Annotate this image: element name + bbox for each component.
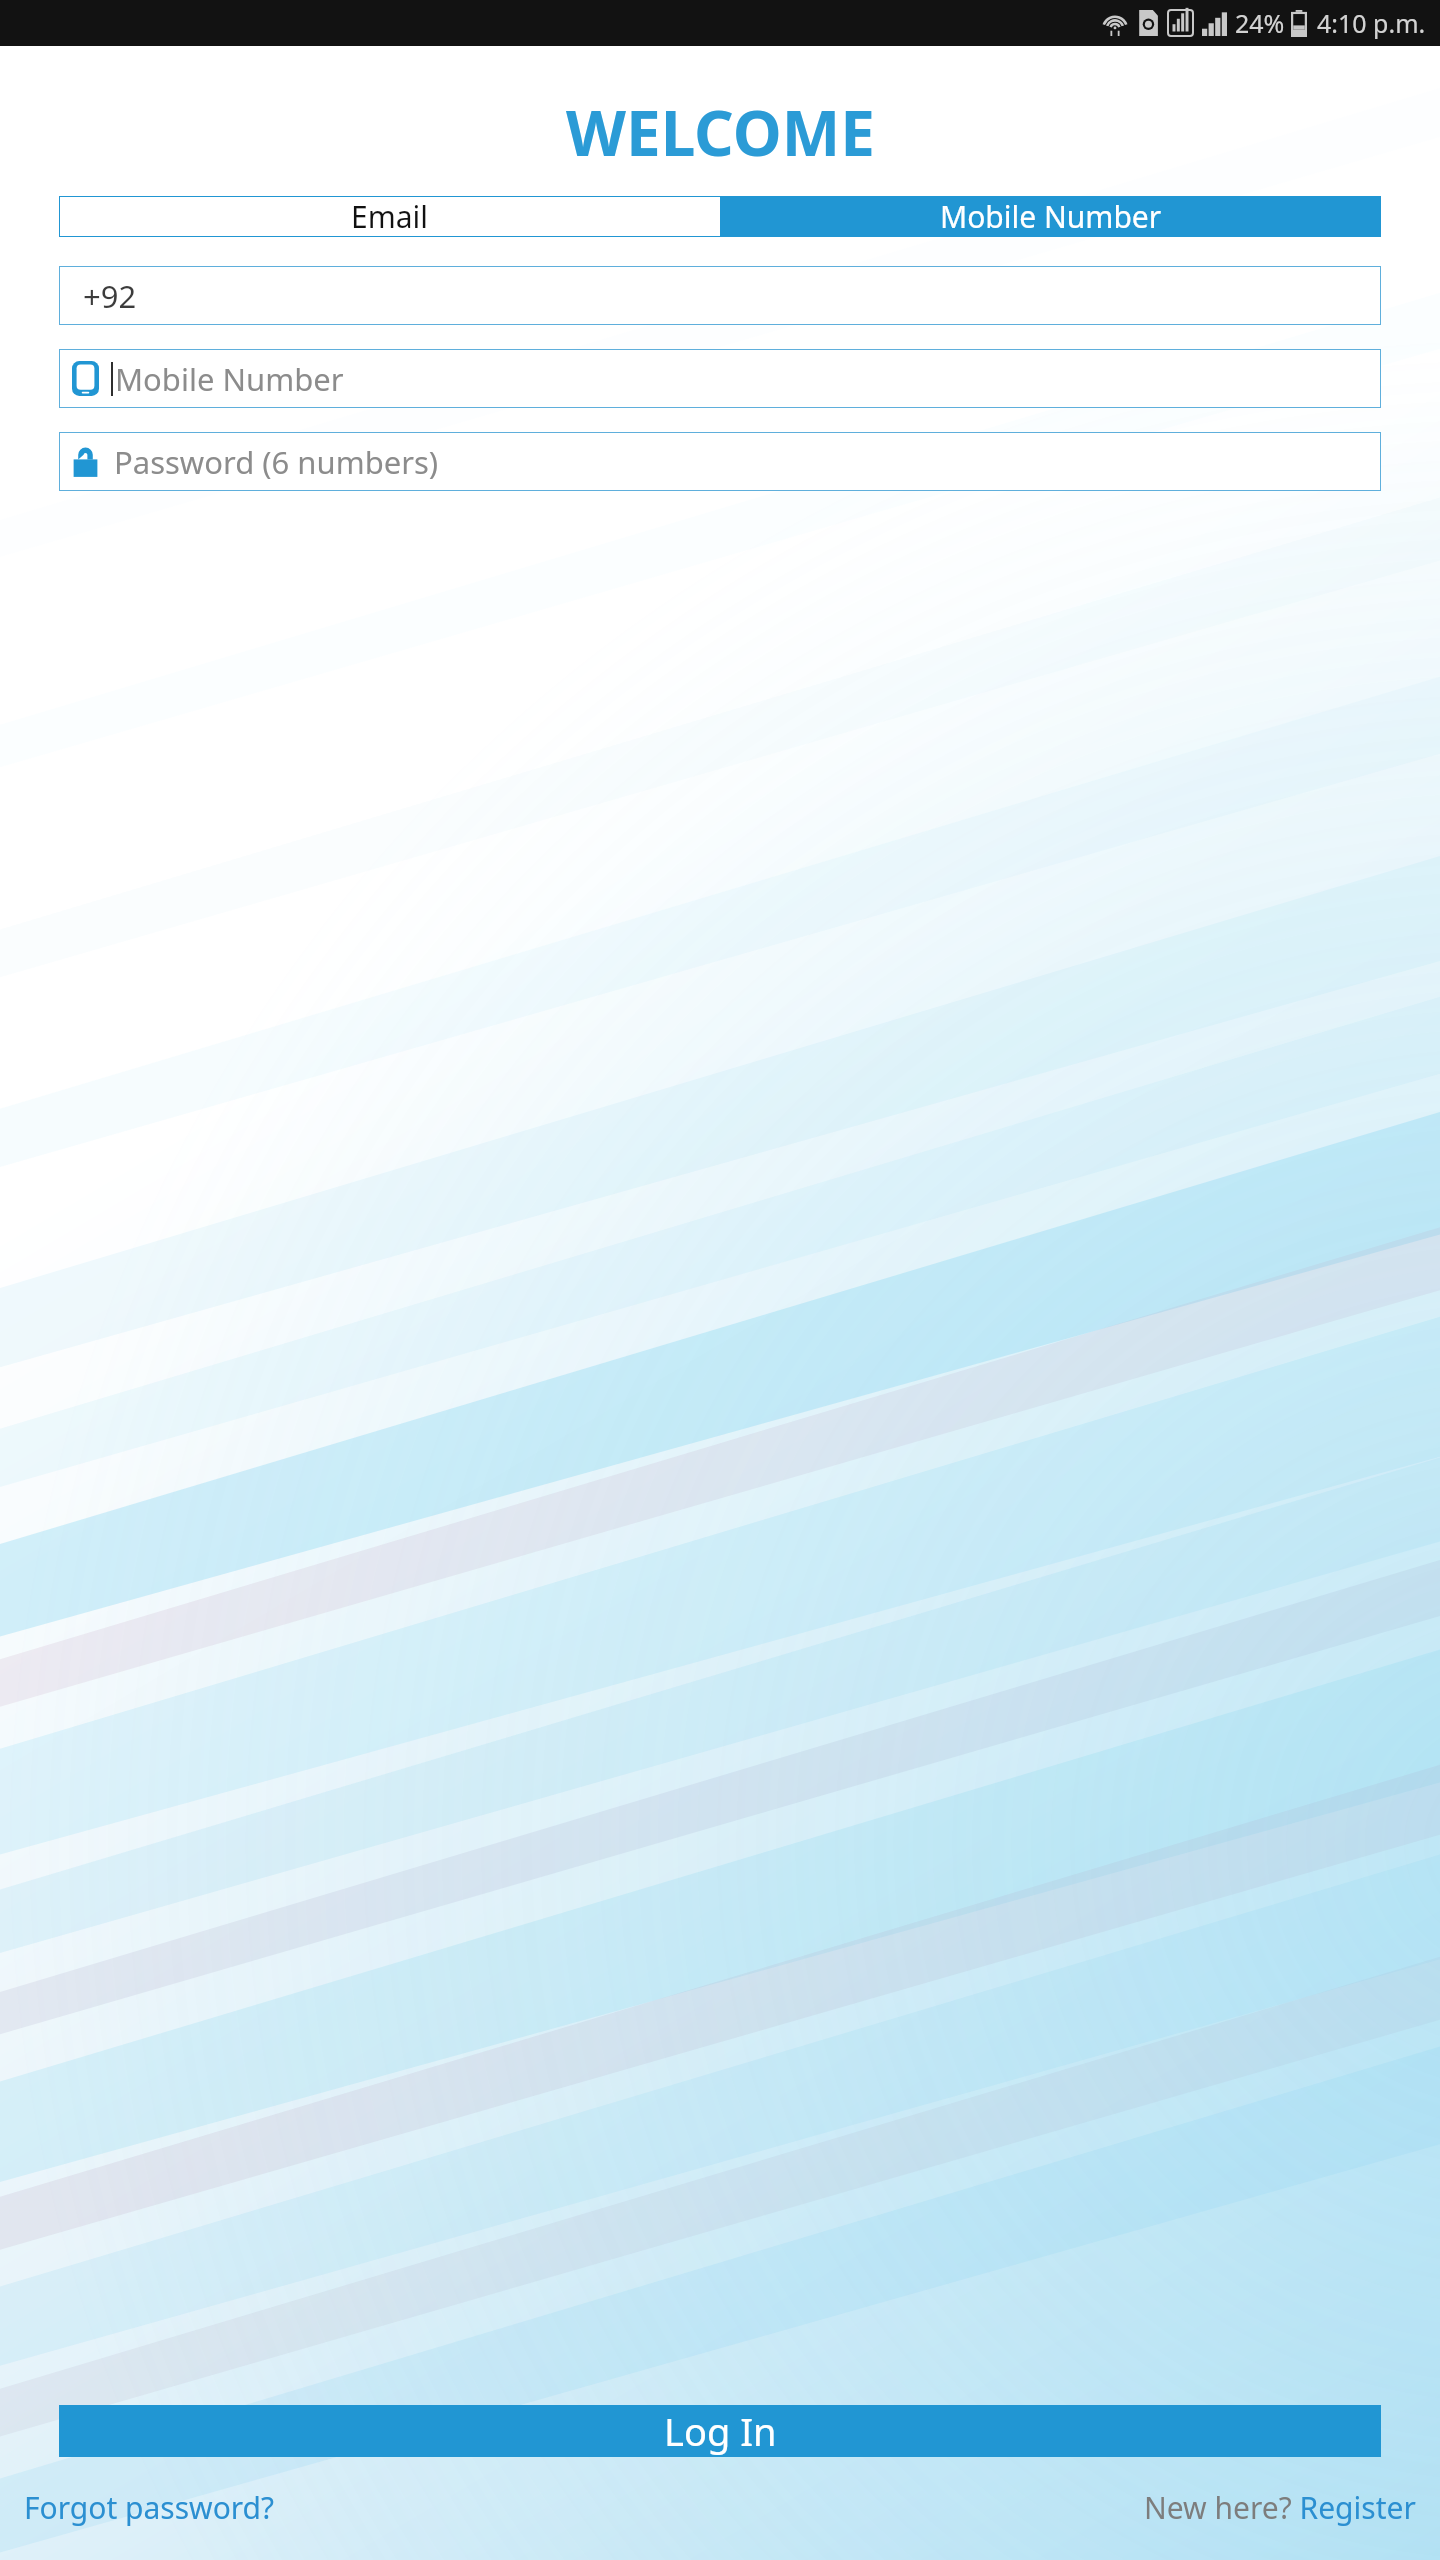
button[interactable]: Log In (59, 2405, 1381, 2457)
staticText: Password (6 numbers) (114, 441, 439, 483)
button[interactable]: Email (59, 196, 720, 237)
staticText: 4:10 p.m. (1317, 6, 1426, 40)
button[interactable]: Password (59, 432, 1381, 491)
button[interactable]: Country code (59, 266, 1381, 325)
staticText: Email (351, 196, 429, 237)
staticText: WELCOME (566, 90, 875, 174)
staticText: New here? Register (1144, 2487, 1416, 2528)
staticText: +92 (83, 275, 137, 317)
staticText: Mobile Number (115, 358, 344, 400)
staticText: 24% (1235, 6, 1285, 40)
button[interactable]: Forgot password? (16, 2479, 283, 2536)
button[interactable]: Mobile Number (720, 196, 1381, 237)
staticText: Mobile Number (940, 196, 1162, 237)
staticText: Log In (664, 2405, 777, 2457)
button[interactable]: New here? Register (1136, 2479, 1424, 2536)
staticText: Forgot password? (24, 2487, 275, 2528)
button[interactable]: Mobile Number (59, 349, 1381, 408)
